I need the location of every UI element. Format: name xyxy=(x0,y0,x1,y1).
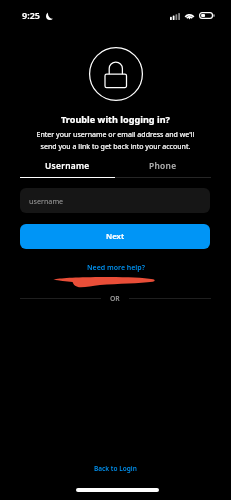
button[interactable]: Back to Login xyxy=(88,461,143,476)
staticText: Username xyxy=(45,160,90,171)
staticText: Enter your username or email address and… xyxy=(0,129,231,151)
staticText: 9:25 xyxy=(22,9,40,21)
button[interactable]: Need more help? xyxy=(83,261,149,275)
button[interactable]: Next xyxy=(20,224,210,249)
staticText: Trouble with logging in? xyxy=(0,113,231,125)
button[interactable]: Username xyxy=(20,160,115,178)
button[interactable]: username xyxy=(20,188,210,213)
button[interactable]: Phone xyxy=(115,160,211,178)
staticText: OR xyxy=(110,294,120,303)
staticText: username xyxy=(29,196,64,206)
staticText: Phone xyxy=(149,160,177,171)
staticText: Next xyxy=(106,231,125,242)
